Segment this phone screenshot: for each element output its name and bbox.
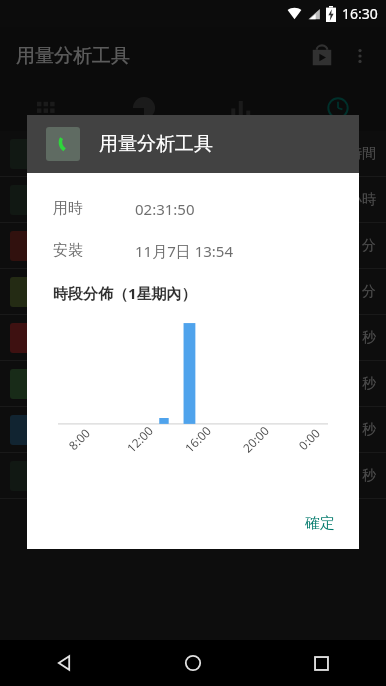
staticText: 分	[362, 283, 376, 301]
staticText: 安裝	[53, 241, 83, 260]
staticText: 時間	[348, 145, 376, 163]
staticText: 8:00	[65, 425, 93, 453]
staticText: 秒	[362, 329, 376, 347]
button[interactable]: Bar chart	[192, 85, 289, 131]
button[interactable]: 分	[0, 223, 386, 268]
button[interactable]: Back	[0, 640, 128, 686]
button[interactable]: 秒	[0, 361, 386, 406]
button[interactable]: Pie chart	[96, 85, 192, 131]
button[interactable]: 小時	[0, 177, 386, 222]
staticText: 20:00	[239, 422, 272, 456]
staticText: 時段分佈（1星期內）	[53, 283, 197, 303]
staticText: 分	[362, 237, 376, 255]
staticText: 秒	[362, 467, 376, 485]
button[interactable]: History	[289, 85, 386, 131]
button[interactable]: Home	[128, 640, 257, 686]
staticText: 小時	[348, 191, 376, 209]
staticText: 02:31:50	[135, 199, 195, 219]
staticText: 12:00	[123, 422, 156, 456]
staticText: 11月7日 13:54	[135, 241, 233, 261]
staticText: 16:00	[181, 422, 214, 456]
staticText: 0:00	[295, 425, 323, 453]
button[interactable]: Apps	[0, 85, 96, 131]
staticText: 16:30	[342, 4, 378, 23]
button[interactable]: Play Store	[302, 36, 342, 76]
button[interactable]: 確定	[281, 506, 359, 541]
staticText: 秒	[362, 421, 376, 439]
button[interactable]: 秒	[0, 315, 386, 360]
button[interactable]: Recents	[257, 640, 386, 686]
staticText: 用時	[53, 199, 83, 218]
button[interactable]: 秒	[0, 453, 386, 498]
button[interactable]: More options	[340, 36, 380, 76]
staticText: 用量分析工具	[16, 44, 130, 68]
button[interactable]: 秒	[0, 407, 386, 452]
button[interactable]: 分	[0, 269, 386, 314]
button[interactable]: 時間	[0, 131, 386, 176]
staticText: 用量分析工具	[99, 132, 213, 156]
staticText: 確定	[305, 514, 335, 533]
staticText: 秒	[362, 375, 376, 393]
